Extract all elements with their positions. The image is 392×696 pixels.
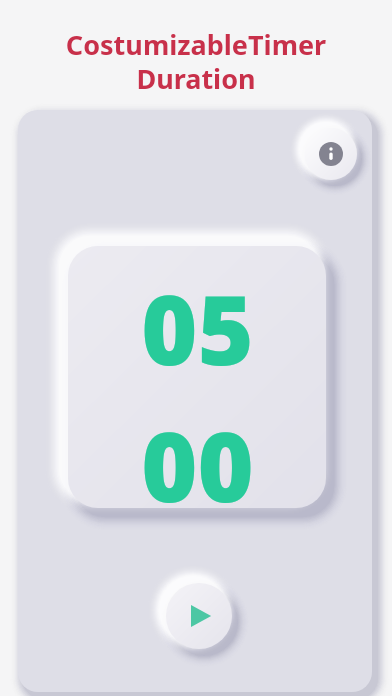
button[interactable]: Information (305, 128, 357, 180)
button[interactable]: Start timer (166, 583, 232, 649)
button[interactable]: 05 (68, 246, 326, 508)
staticText: 00 (141, 399, 254, 508)
staticText: 05 (141, 262, 254, 393)
staticText: CostumizableTimer Duration (26, 26, 366, 97)
